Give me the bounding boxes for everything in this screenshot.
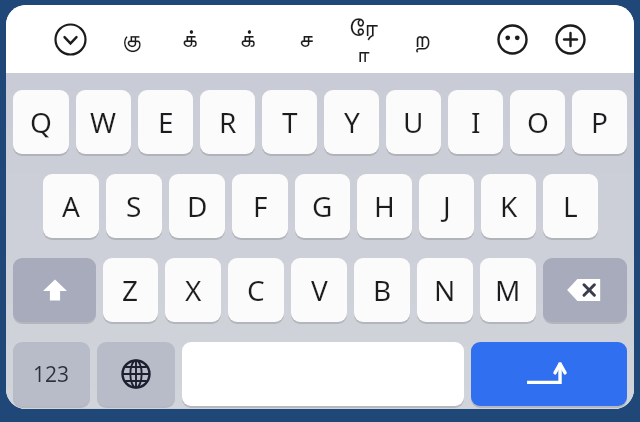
button[interactable]: Enter xyxy=(471,342,627,406)
staticText: ரோ xyxy=(348,16,378,62)
button[interactable]: E xyxy=(138,90,193,154)
button[interactable]: Shift xyxy=(13,258,96,322)
staticText: V xyxy=(311,271,328,309)
button[interactable]: U xyxy=(386,90,441,154)
staticText: 123 xyxy=(33,360,70,389)
staticText: க் xyxy=(239,27,255,52)
button[interactable]: L xyxy=(543,174,598,238)
staticText: P xyxy=(591,103,608,141)
button[interactable]: Add xyxy=(550,19,590,59)
button[interactable]: க் xyxy=(232,16,262,62)
button[interactable]: J xyxy=(419,174,474,238)
button[interactable]: X xyxy=(165,258,221,322)
button[interactable]: I xyxy=(448,90,503,154)
staticText: B xyxy=(373,271,392,309)
button[interactable]: C xyxy=(228,258,284,322)
staticText: S xyxy=(126,187,142,225)
staticText: D xyxy=(187,187,208,225)
button[interactable]: Space xyxy=(182,342,464,406)
button[interactable]: M xyxy=(480,258,536,322)
button[interactable]: F xyxy=(232,174,288,238)
staticText: H xyxy=(374,187,395,225)
staticText: W xyxy=(90,103,117,141)
button[interactable]: Z xyxy=(103,258,158,322)
staticText: Z xyxy=(122,271,139,309)
staticText: கு xyxy=(121,27,141,52)
button[interactable]: Emoji xyxy=(492,19,532,59)
staticText: J xyxy=(443,187,451,225)
button[interactable]: Q xyxy=(13,90,69,154)
staticText: T xyxy=(282,103,298,141)
staticText: G xyxy=(312,187,333,225)
button[interactable]: W xyxy=(76,90,131,154)
button[interactable]: H xyxy=(357,174,412,238)
button[interactable]: Y xyxy=(324,90,379,154)
staticText: Y xyxy=(344,103,360,141)
button[interactable]: O xyxy=(510,90,565,154)
button[interactable]: S xyxy=(106,174,162,238)
button[interactable]: G xyxy=(295,174,350,238)
button[interactable]: P xyxy=(572,90,627,154)
staticText: M xyxy=(495,271,521,309)
button[interactable]: B xyxy=(354,258,410,322)
staticText: C xyxy=(247,271,265,309)
button[interactable]: ற xyxy=(406,16,436,62)
button[interactable]: D xyxy=(169,174,225,238)
button[interactable]: Backspace xyxy=(543,258,627,322)
staticText: ற xyxy=(413,27,430,52)
staticText: N xyxy=(434,271,456,309)
button[interactable]: K xyxy=(481,174,536,238)
button[interactable]: 123 xyxy=(13,342,90,406)
button[interactable]: க் xyxy=(174,16,204,62)
button[interactable]: Change language xyxy=(97,342,175,406)
button[interactable]: A xyxy=(43,174,99,238)
button[interactable]: ரோ xyxy=(348,16,378,62)
button[interactable]: கு xyxy=(116,16,146,62)
staticText: ச xyxy=(298,27,313,52)
staticText: I xyxy=(471,103,481,141)
button[interactable]: ச xyxy=(290,16,320,62)
button[interactable]: N xyxy=(417,258,473,322)
staticText: R xyxy=(219,103,237,141)
button[interactable]: R xyxy=(200,90,255,154)
staticText: U xyxy=(403,103,424,141)
button[interactable]: T xyxy=(262,90,317,154)
staticText: க் xyxy=(181,27,197,52)
button[interactable]: Hide keyboard xyxy=(50,19,90,59)
staticText: X xyxy=(185,271,202,309)
staticText: K xyxy=(500,187,518,225)
staticText: E xyxy=(158,103,174,141)
staticText: A xyxy=(62,187,80,225)
staticText: Q xyxy=(30,103,52,141)
staticText: L xyxy=(563,187,578,225)
button[interactable]: V xyxy=(291,258,347,322)
staticText: F xyxy=(253,187,268,225)
staticText: O xyxy=(527,103,549,141)
